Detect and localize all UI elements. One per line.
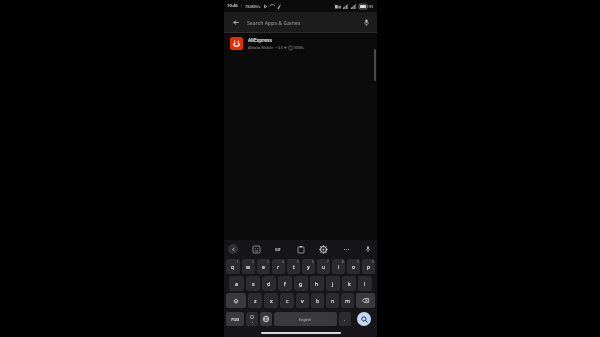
button[interactable]: ?123	[226, 312, 244, 326]
staticText: 5	[297, 260, 299, 264]
button[interactable]: u	[317, 259, 330, 274]
staticText: y	[307, 263, 310, 270]
button[interactable]: d	[262, 276, 276, 291]
staticText: n	[331, 297, 335, 304]
button[interactable]: n	[326, 293, 339, 308]
staticText: r	[277, 263, 280, 270]
button[interactable]: .	[339, 312, 351, 326]
button[interactable]: More options	[341, 244, 351, 254]
staticText: 3	[267, 260, 269, 264]
staticText: q	[231, 263, 235, 270]
button[interactable]: Backspace	[356, 293, 375, 308]
button[interactable]: j	[326, 276, 340, 291]
button[interactable]: i	[332, 259, 345, 274]
button[interactable]: Search	[357, 312, 371, 326]
staticText: w	[246, 263, 251, 270]
button[interactable]: Emoji	[246, 312, 258, 326]
staticText: ,	[252, 319, 253, 323]
button[interactable]: Stickers	[251, 244, 261, 254]
button[interactable]: Expand toolbar	[228, 244, 238, 254]
button[interactable]: x	[264, 293, 278, 308]
button[interactable]: b	[311, 293, 324, 308]
staticText: 9	[357, 260, 359, 264]
button[interactable]: r	[272, 259, 285, 274]
staticText: 1	[237, 260, 239, 264]
button[interactable]: Settings	[318, 244, 328, 254]
button[interactable]: Voice input	[363, 244, 373, 254]
staticText: o	[352, 263, 356, 270]
button[interactable]: Clipboard	[296, 244, 306, 254]
button[interactable]: Voice search	[359, 15, 373, 29]
staticText: h	[315, 280, 319, 287]
staticText: d	[267, 280, 271, 287]
staticText: |	[240, 3, 243, 9]
staticText: .	[344, 317, 346, 322]
button[interactable]: h	[310, 276, 324, 291]
button[interactable]: Search Apps & Games	[247, 19, 359, 26]
staticText: c	[286, 297, 289, 304]
button[interactable]: v	[296, 293, 309, 308]
button[interactable]: l	[358, 276, 372, 291]
staticText: s	[252, 280, 255, 287]
staticText: Alibaba Mobile	[248, 45, 274, 50]
staticText: 2	[252, 260, 254, 264]
staticText: 93	[369, 4, 374, 9]
staticText: ?123	[231, 317, 240, 322]
staticText: 6	[312, 260, 314, 264]
staticText: g	[299, 280, 303, 287]
staticText: 100M+	[293, 45, 305, 50]
button[interactable]: Shift	[226, 293, 246, 308]
staticText: English	[299, 317, 312, 322]
staticText: p	[367, 263, 371, 270]
staticText: 4	[282, 260, 284, 264]
button[interactable]: k	[342, 276, 356, 291]
staticText: 7	[327, 260, 329, 264]
button[interactable]: English	[274, 312, 337, 326]
button[interactable]: w	[242, 259, 255, 274]
button[interactable]: m	[341, 293, 354, 308]
button[interactable]: p	[362, 259, 375, 274]
staticText: x	[270, 297, 273, 304]
staticText: 784KB/s	[245, 4, 261, 9]
staticText: u	[322, 263, 326, 270]
button[interactable]: GIF	[273, 244, 283, 254]
staticText: f	[284, 280, 286, 287]
staticText: t	[293, 263, 295, 270]
button[interactable]: z	[248, 293, 262, 308]
staticText: i	[338, 263, 340, 270]
staticText: 0	[372, 260, 374, 264]
staticText: b	[316, 297, 320, 304]
button[interactable]: c	[280, 293, 294, 308]
button[interactable]: y	[302, 259, 315, 274]
button[interactable]: Change language	[260, 312, 272, 326]
button[interactable]: q	[226, 259, 240, 274]
button[interactable]: e	[257, 259, 270, 274]
staticText: 8	[342, 260, 344, 264]
staticText: j	[332, 280, 334, 287]
staticText: • 4.5	[276, 45, 284, 50]
staticText: m	[345, 297, 350, 304]
button[interactable]: s	[246, 276, 260, 291]
staticText: e	[262, 263, 265, 270]
button[interactable]: t	[287, 259, 300, 274]
button[interactable]: Back	[228, 15, 242, 29]
staticText: AliExpress	[248, 37, 272, 44]
button[interactable]: AliExpress	[224, 33, 377, 53]
button[interactable]: f	[278, 276, 292, 291]
button[interactable]: a	[229, 276, 244, 291]
staticText: l	[364, 280, 366, 287]
staticText: a	[235, 280, 238, 287]
staticText: 10:46	[227, 3, 238, 9]
staticText: v	[301, 297, 304, 304]
staticText: Search Apps & Games	[247, 19, 301, 26]
staticText: z	[254, 297, 257, 304]
staticText: GIF	[275, 247, 281, 252]
button[interactable]: o	[347, 259, 360, 274]
staticText: k	[348, 280, 351, 287]
button[interactable]: g	[294, 276, 308, 291]
